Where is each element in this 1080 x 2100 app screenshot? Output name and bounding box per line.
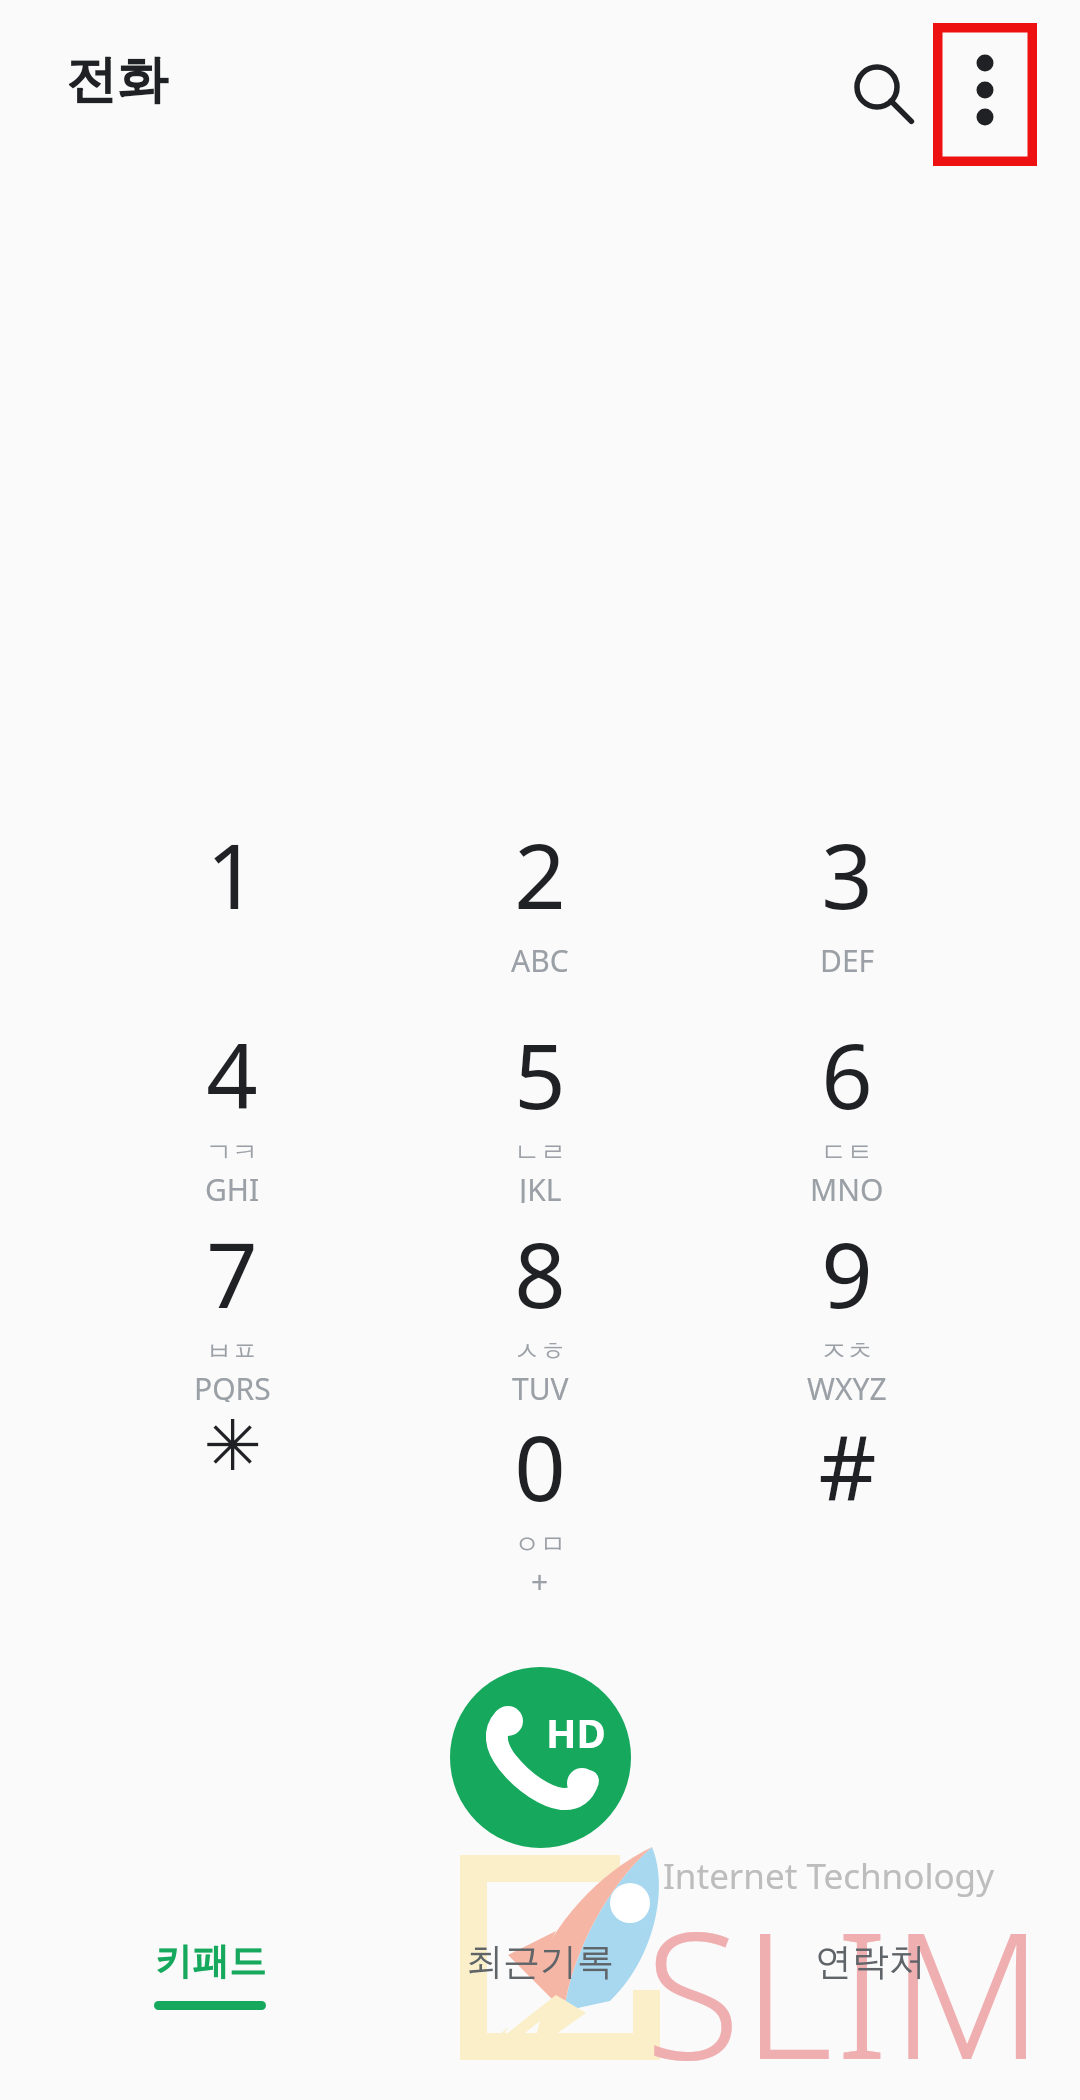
button[interactable]: More options bbox=[945, 40, 1025, 140]
staticText: 8 bbox=[514, 1212, 566, 1335]
staticText: ㄴㄹ bbox=[514, 1136, 566, 1169]
staticText: MNO bbox=[810, 1169, 884, 1203]
staticText: SLIM bbox=[645, 1872, 1046, 2100]
staticText: 7 bbox=[206, 1212, 258, 1335]
staticText: ㄱㅋ bbox=[206, 1136, 258, 1169]
staticText: ㄷㅌ bbox=[821, 1136, 873, 1169]
button[interactable]: Call with HD voice bbox=[450, 1667, 631, 1848]
staticText: + bbox=[531, 1561, 549, 1595]
staticText: 전화 bbox=[66, 48, 168, 112]
staticText: ABC bbox=[511, 940, 569, 981]
button[interactable]: 9 bbox=[722, 1212, 972, 1402]
staticText: ㅂㅍ bbox=[206, 1335, 258, 1368]
staticText: ✳ bbox=[203, 1405, 262, 1486]
button[interactable]: 7 bbox=[107, 1212, 357, 1402]
button[interactable]: 키패드 bbox=[60, 1938, 360, 2048]
staticText: TUV bbox=[512, 1368, 569, 1402]
staticText: ㅇㅁ bbox=[514, 1528, 566, 1561]
button[interactable]: 6 bbox=[722, 1013, 972, 1203]
staticText: HD bbox=[546, 1705, 606, 1759]
staticText: PQRS bbox=[194, 1368, 271, 1402]
staticText: 9 bbox=[821, 1212, 873, 1335]
staticText: ㅅㅎ bbox=[514, 1335, 566, 1368]
staticText: GHI bbox=[205, 1169, 260, 1203]
staticText: DEF bbox=[820, 940, 875, 981]
staticText: JKL bbox=[519, 1169, 562, 1203]
button[interactable]: 0 bbox=[415, 1405, 665, 1595]
staticText: 연락처 bbox=[815, 1938, 926, 1985]
button[interactable]: 3 bbox=[722, 813, 972, 1003]
button[interactable]: 최근기록 bbox=[390, 1938, 690, 2048]
button[interactable]: 5 bbox=[415, 1013, 665, 1203]
staticText: 3 bbox=[821, 813, 873, 936]
staticText: Internet Technology bbox=[663, 1852, 994, 1900]
staticText: # bbox=[818, 1405, 877, 1528]
button[interactable]: 4 bbox=[107, 1013, 357, 1203]
staticText: 4 bbox=[206, 1013, 258, 1136]
button[interactable]: # bbox=[722, 1405, 972, 1595]
button[interactable]: 8 bbox=[415, 1212, 665, 1402]
button[interactable]: ✳ bbox=[107, 1405, 357, 1595]
staticText: 최근기록 bbox=[466, 1938, 614, 1985]
staticText: 6 bbox=[821, 1013, 873, 1136]
staticText: 5 bbox=[514, 1013, 566, 1136]
button[interactable]: 1 bbox=[107, 813, 357, 1003]
button[interactable]: 전화 bbox=[66, 48, 168, 112]
staticText: 키패드 bbox=[155, 1938, 266, 1985]
button[interactable]: 2 bbox=[415, 813, 665, 1003]
staticText: 2 bbox=[514, 813, 566, 936]
staticText: 0 bbox=[514, 1405, 566, 1528]
staticText: WXYZ bbox=[807, 1368, 887, 1402]
button[interactable]: 연락처 bbox=[720, 1938, 1020, 2048]
staticText: ㅈㅊ bbox=[821, 1335, 873, 1368]
button[interactable]: Search bbox=[832, 44, 924, 136]
staticText: 1 bbox=[206, 813, 258, 936]
